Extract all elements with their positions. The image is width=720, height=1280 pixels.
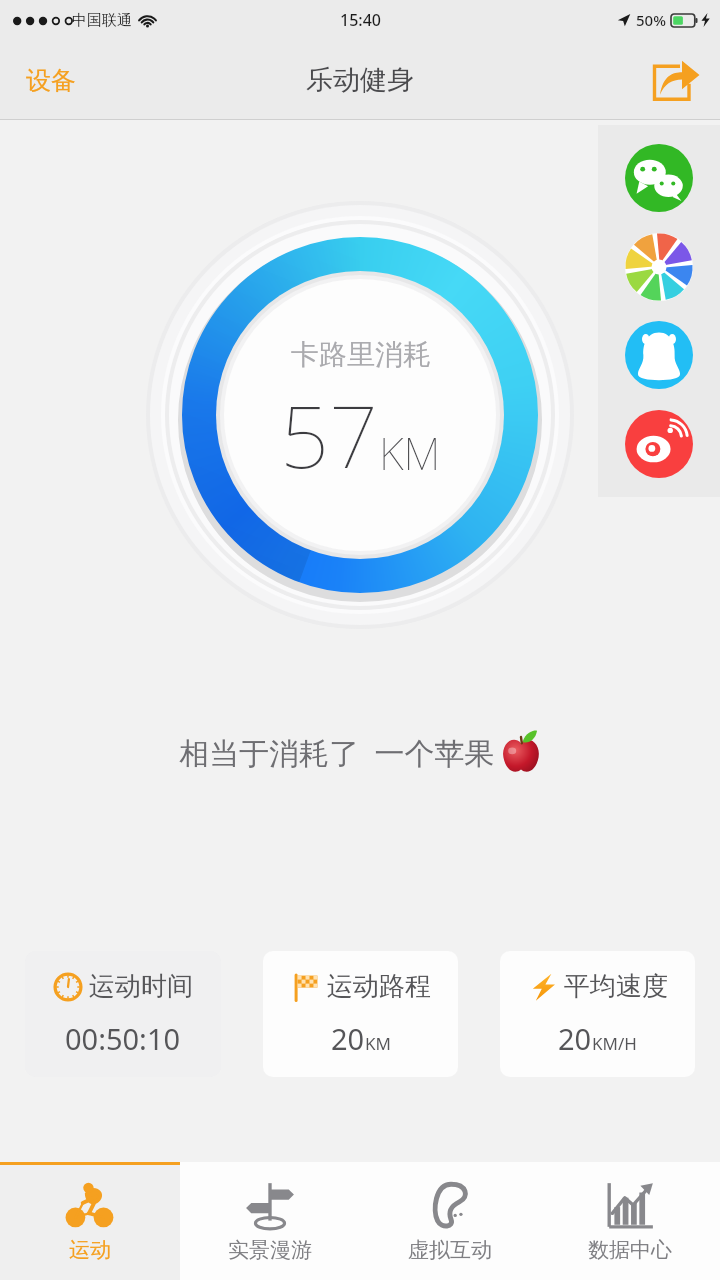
staticText: 20	[558, 1019, 592, 1058]
button[interactable]: QQ分享	[623, 319, 695, 391]
staticText: KM	[365, 1032, 391, 1055]
staticText: KM	[379, 423, 441, 483]
button[interactable]: 实景漫游	[180, 1162, 360, 1280]
staticText: 相当于消耗了 一个苹果	[179, 732, 495, 773]
staticText: 设备	[26, 65, 76, 96]
staticText: 卡路里消耗	[291, 337, 431, 372]
staticText: 运动路程	[327, 970, 431, 1003]
button[interactable]: 运动	[0, 1162, 180, 1280]
button[interactable]: 分享	[644, 51, 706, 109]
button[interactable]: 数据中心	[540, 1162, 720, 1280]
staticText: 20	[331, 1019, 365, 1058]
staticText: 虚拟互动	[408, 1237, 492, 1263]
button[interactable]: 微信分享	[623, 142, 695, 214]
button[interactable]: 平均速度	[500, 951, 695, 1077]
button[interactable]: 虚拟互动	[360, 1162, 540, 1280]
button[interactable]: 微博分享	[623, 408, 695, 480]
staticText: 15:40	[340, 9, 381, 31]
staticText: 50%	[636, 10, 666, 30]
staticText: 平均速度	[564, 970, 668, 1003]
staticText: KM/H	[592, 1032, 637, 1055]
staticText: 乐动健身	[306, 63, 414, 97]
staticText: 数据中心	[588, 1237, 672, 1263]
staticText: 运动	[69, 1237, 111, 1263]
button[interactable]: 朋友圈分享	[623, 231, 695, 303]
staticText: 57	[280, 376, 379, 493]
staticText: 00:50:10	[65, 1019, 181, 1058]
button[interactable]: 运动时间	[25, 951, 221, 1077]
button[interactable]: 运动路程	[263, 951, 458, 1077]
staticText: 运动时间	[89, 970, 193, 1003]
button[interactable]: 设备	[16, 57, 86, 104]
staticText: 实景漫游	[228, 1237, 312, 1263]
staticText: 中国联通	[72, 11, 132, 30]
